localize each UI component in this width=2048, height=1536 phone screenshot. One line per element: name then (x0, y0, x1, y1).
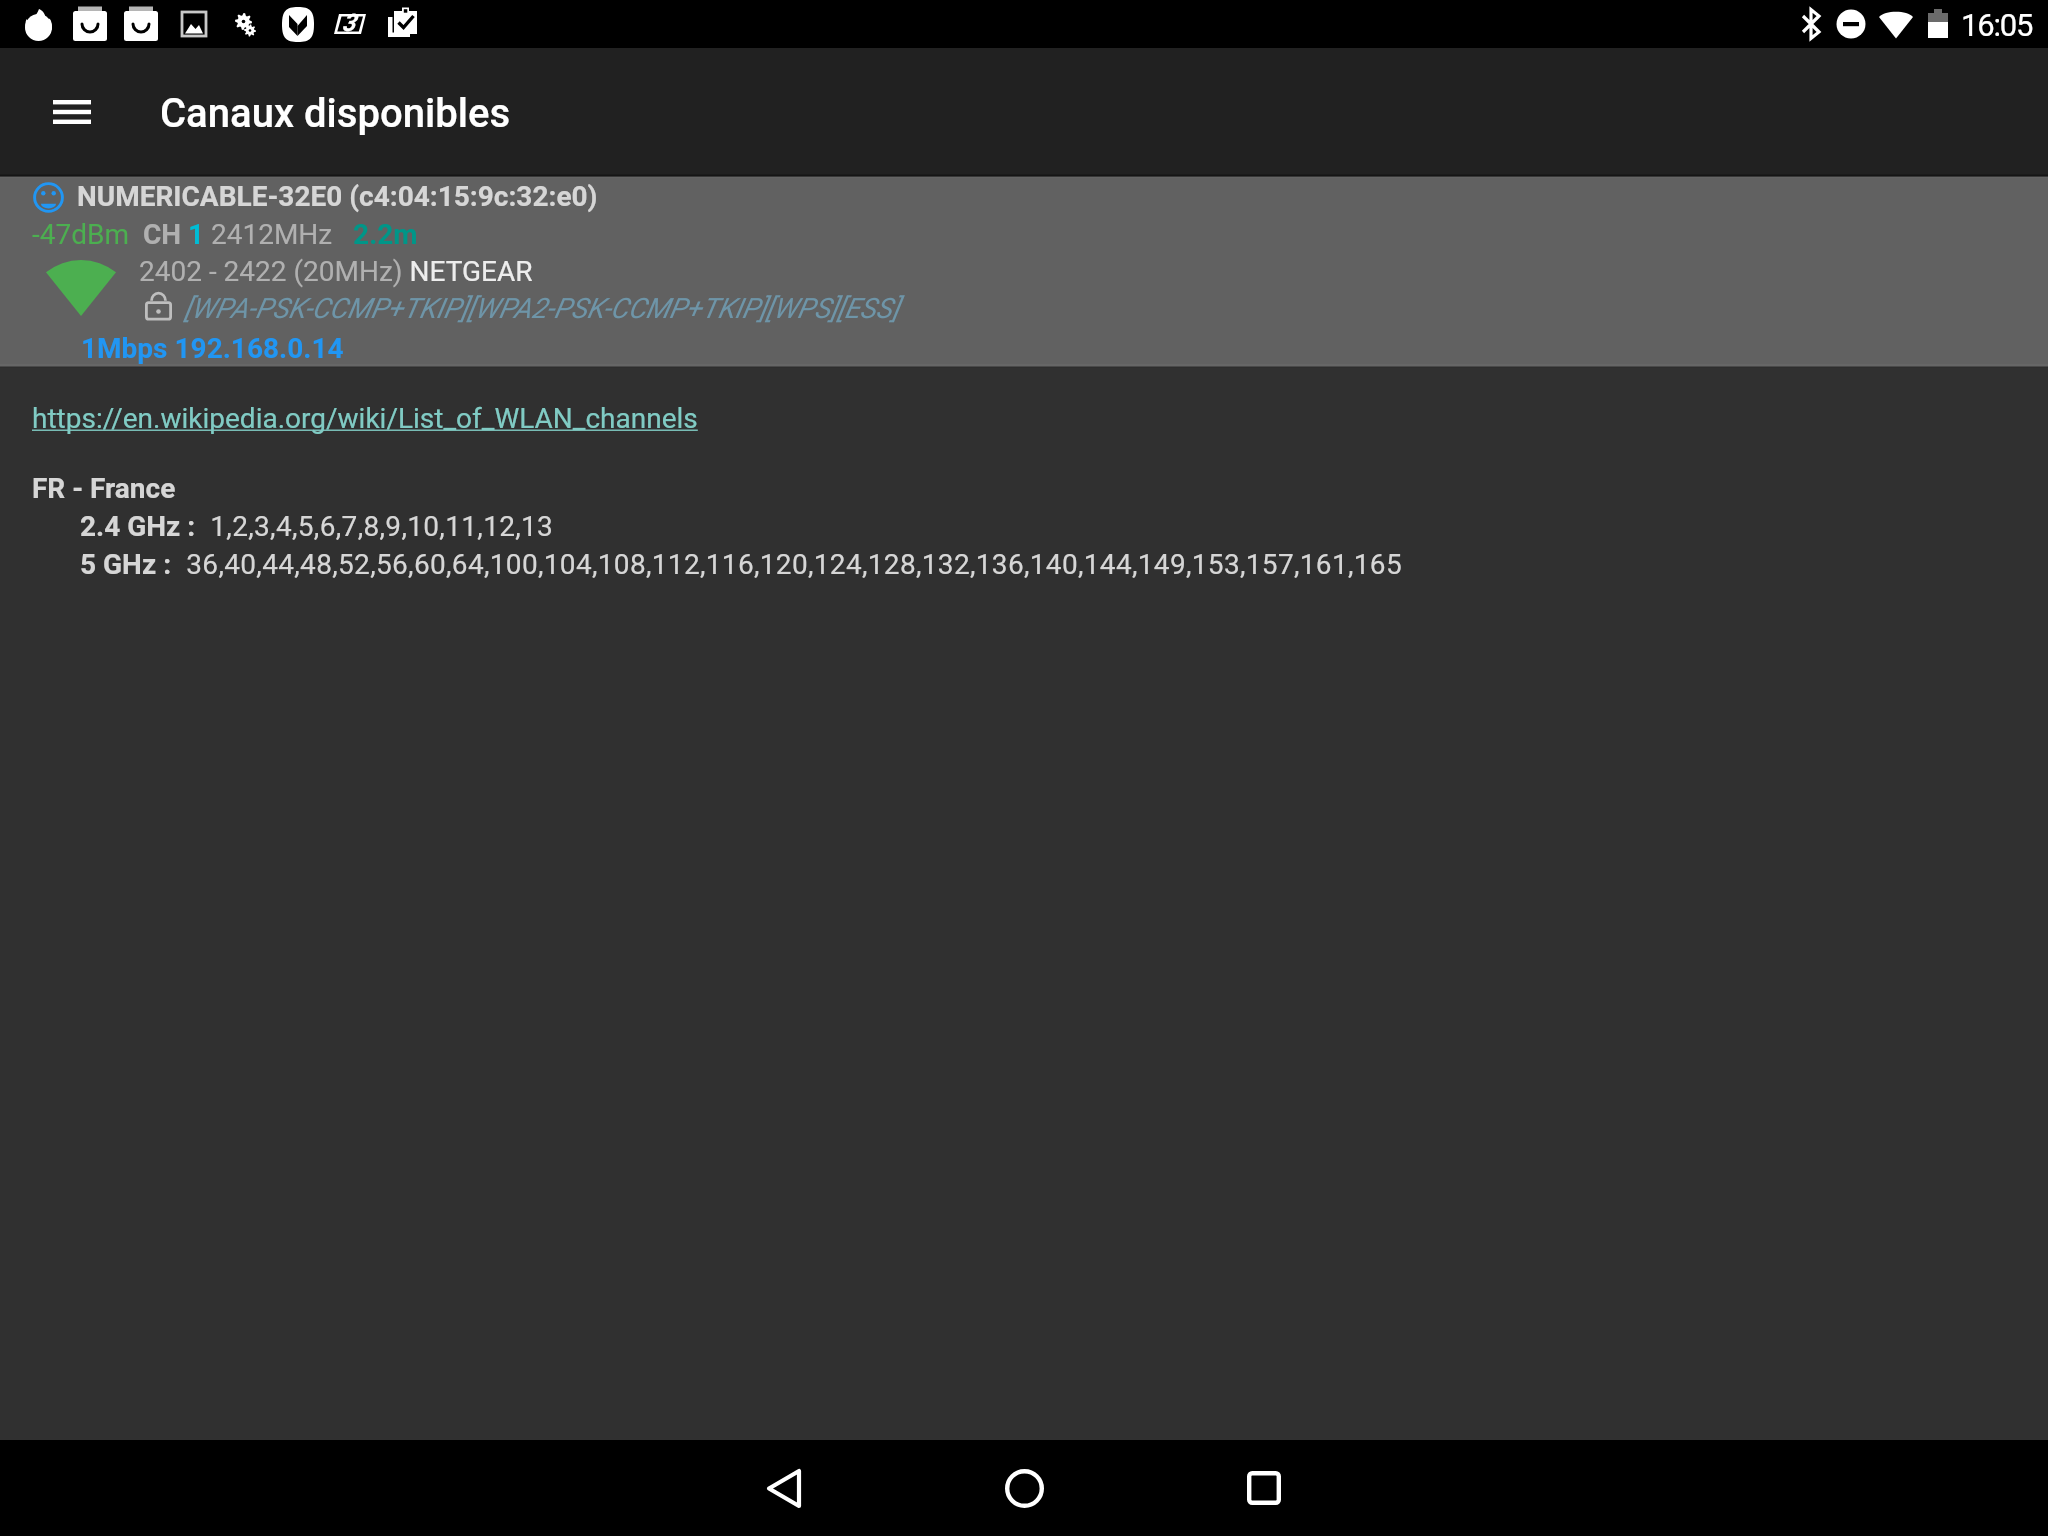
staticText: [WPA-PSK-CCMP+TKIP][WPA2-PSK-CCMP+TKIP][… (184, 292, 899, 325)
button[interactable]: Home (976, 1440, 1072, 1536)
staticText: FR - France (32, 472, 176, 505)
button[interactable]: NUMERICABLE-32E0 (c4:04:15:9c:32:e0) (0, 176, 2048, 366)
staticText: 1Mbps 192.168.0.14 (81, 332, 344, 365)
staticText: -47dBm CH 1 2412MHz 2.2m (32, 218, 418, 251)
button[interactable]: https://en.wikipedia.org/wiki/List_of_WL… (32, 402, 698, 435)
staticText: 16:05 (1961, 7, 2033, 43)
staticText: 5 GHz : (80, 548, 179, 581)
staticText: 2.4 GHz : (80, 510, 203, 543)
staticText: 3 (342, 9, 356, 37)
button[interactable]: Back (736, 1440, 832, 1536)
staticText: 36,40,44,48,52,56,60,64,100,104,108,112,… (179, 548, 1402, 581)
staticText: NUMERICABLE-32E0 (c4:04:15:9c:32:e0) (77, 180, 598, 213)
staticText: Canaux disponibles (160, 90, 511, 137)
staticText: 1,2,3,4,5,6,7,8,9,10,11,12,13 (203, 510, 554, 543)
staticText: 2402 - 2422 (20MHz) NETGEAR (139, 255, 533, 288)
button[interactable]: Recent apps (1216, 1440, 1312, 1536)
button[interactable]: Open navigation menu (34, 74, 110, 150)
